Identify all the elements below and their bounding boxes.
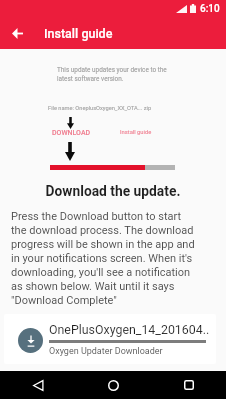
staticText: Press the Download button to start the d… [11, 210, 198, 307]
staticText: DOWNLOAD [52, 129, 91, 137]
staticText: Download the update. [0, 183, 226, 199]
button[interactable]: Back [0, 371, 76, 399]
staticText: Install guide [120, 129, 152, 136]
staticText: 6:10 [200, 3, 220, 15]
staticText: This update updates your device to the l… [57, 66, 167, 83]
staticText: File name: OneplusOxygen_XX_OTA... zip [48, 105, 152, 112]
button[interactable]: Back [0, 17, 34, 49]
button[interactable]: Recent apps [151, 371, 226, 399]
staticText: OnePlusOxygen_14_201604.. [49, 322, 210, 337]
staticText: Oxygen Updater Downloader [49, 346, 163, 357]
button[interactable]: Home [76, 371, 151, 399]
staticText: Install guide [44, 26, 113, 41]
button[interactable]: OnePlusOxygen_14_201604.. [4, 314, 216, 364]
